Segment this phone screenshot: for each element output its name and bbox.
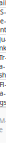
button[interactable]: Mail <box>0 0 6 8</box>
staticText: Sent <box>0 8 6 34</box>
staticText: Me <box>0 116 6 134</box>
button[interactable]: Flags <box>0 80 6 107</box>
button[interactable]: Junk <box>0 35 6 53</box>
staticText: Trash <box>0 53 6 79</box>
button[interactable]: Sent <box>0 8 6 35</box>
staticText: Junk <box>0 35 6 52</box>
staticText: Mail <box>0 0 6 7</box>
button[interactable]: Me <box>0 116 6 134</box>
button[interactable]: Trash <box>0 53 6 80</box>
staticText: Flags <box>0 80 6 106</box>
